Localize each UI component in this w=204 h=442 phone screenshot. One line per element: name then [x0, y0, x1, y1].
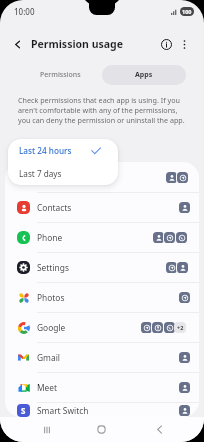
button[interactable]: Photos [5, 283, 199, 312]
button[interactable]: Meet [5, 373, 199, 402]
button[interactable]: Navigate up [6, 33, 28, 55]
staticText: Settings [37, 262, 69, 273]
staticText: Phone [37, 232, 63, 243]
staticText: Meet [37, 382, 58, 393]
button[interactable]: Apps [102, 65, 186, 85]
staticText: Photos [37, 292, 65, 303]
button[interactable]: Home [88, 417, 115, 442]
staticText: 10:00 [14, 6, 35, 17]
button[interactable]: Camera [5, 162, 199, 192]
staticText: Smart Switch [37, 405, 89, 416]
staticText: Gmail [37, 352, 60, 363]
button[interactable]: Recent apps [33, 417, 60, 442]
staticText: 100 [182, 8, 192, 15]
staticText: Contacts [37, 202, 72, 213]
button[interactable]: Phone [5, 223, 199, 252]
button[interactable]: Last 7 days [8, 162, 118, 185]
button[interactable]: S [5, 403, 199, 417]
staticText: Check permissions that each app is using… [18, 95, 190, 125]
staticText: Camera [37, 172, 68, 183]
staticText: Permission usage [31, 37, 123, 51]
button[interactable]: Permissions [18, 65, 102, 85]
button[interactable]: Gmail [5, 343, 199, 372]
button[interactable]: Contacts [5, 193, 199, 222]
staticText: S [21, 405, 26, 416]
button[interactable]: Information [155, 33, 177, 55]
staticText: Google [37, 322, 66, 333]
staticText: Apps [135, 70, 153, 80]
staticText: Permissions [40, 70, 81, 80]
button[interactable]: Google [5, 313, 199, 342]
button[interactable]: More options [174, 34, 194, 54]
staticText: Last 7 days [19, 168, 62, 179]
staticText: +2 [177, 324, 184, 331]
staticText: Last 24 hours [19, 145, 72, 156]
button[interactable]: Back [146, 417, 173, 442]
button[interactable]: Settings [5, 253, 199, 282]
button[interactable]: Last 24 hours [8, 139, 118, 162]
